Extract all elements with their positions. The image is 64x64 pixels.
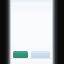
button[interactable] [11, 0, 52, 5]
button[interactable]: Secondary card [31, 51, 50, 58]
button[interactable]: Primary action card [13, 51, 28, 58]
